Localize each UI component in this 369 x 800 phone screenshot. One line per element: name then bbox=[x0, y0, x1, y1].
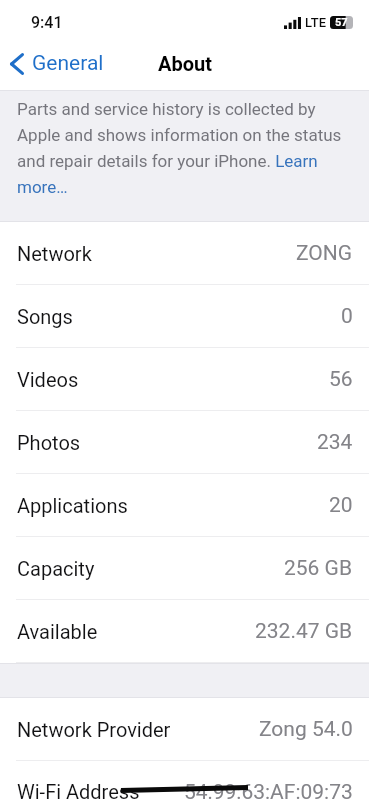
staticText: 9:41 bbox=[31, 13, 63, 32]
button[interactable]: Wi-Fi Address bbox=[0, 761, 369, 800]
staticText: Songs bbox=[17, 305, 73, 328]
staticText: ZONG bbox=[296, 241, 353, 266]
staticText: General bbox=[32, 51, 104, 76]
staticText: 57 bbox=[335, 16, 348, 29]
staticText: Videos bbox=[17, 368, 79, 391]
button[interactable]: Learn more bbox=[276, 150, 352, 176]
staticText: 256 GB bbox=[284, 556, 353, 581]
staticText: Applications bbox=[17, 494, 128, 517]
button[interactable]: Songs bbox=[0, 285, 369, 348]
staticText: 54:99:63:AF:09:73 bbox=[184, 780, 353, 800]
staticText: 56 bbox=[329, 367, 353, 392]
staticText: Zong 54.0 bbox=[259, 717, 353, 742]
staticText: Available bbox=[17, 620, 98, 643]
staticText: LTE bbox=[305, 15, 326, 30]
button[interactable]: Available bbox=[0, 600, 369, 663]
staticText: About bbox=[158, 52, 212, 75]
staticText: 234 bbox=[317, 430, 353, 455]
button[interactable]: Videos bbox=[0, 348, 369, 411]
staticText: Wi-Fi Address bbox=[17, 780, 140, 800]
other: Back to General bbox=[10, 53, 24, 75]
button[interactable]: Photos bbox=[0, 411, 369, 474]
staticText: Network Provider bbox=[17, 718, 171, 741]
button[interactable]: Network Provider bbox=[0, 698, 369, 761]
staticText: 232.47 GB bbox=[255, 619, 353, 644]
staticText: Parts and service history is collected b… bbox=[17, 99, 352, 197]
button[interactable]: Applications bbox=[0, 474, 369, 537]
button[interactable]: Back to General bbox=[0, 45, 112, 82]
button[interactable]: Capacity bbox=[0, 537, 369, 600]
staticText: Capacity bbox=[17, 557, 95, 580]
button[interactable]: Network bbox=[0, 222, 369, 285]
staticText: Photos bbox=[17, 431, 81, 454]
button[interactable] bbox=[17, 176, 73, 202]
staticText: 20 bbox=[329, 493, 353, 518]
staticText: Network bbox=[17, 242, 92, 265]
staticText: 0 bbox=[341, 304, 353, 329]
